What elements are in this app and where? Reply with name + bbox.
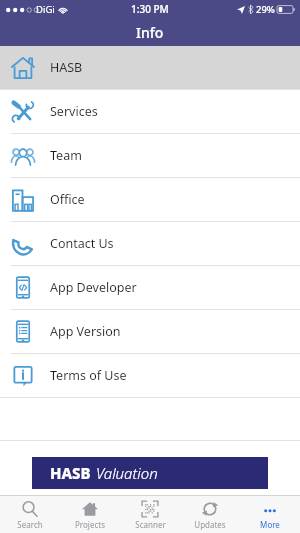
staticText: Team [50, 147, 82, 164]
button[interactable]: More [240, 496, 300, 533]
staticText: App Version [50, 323, 121, 340]
staticText: Search [17, 519, 43, 530]
button[interactable]: HASB [0, 46, 300, 89]
staticText: Office [50, 191, 85, 208]
staticText: More [260, 519, 280, 530]
staticText: 1:30 PM [131, 2, 169, 16]
button[interactable]: Updates [180, 496, 240, 533]
button[interactable]: Office [0, 178, 300, 221]
staticText: HASB [50, 59, 83, 76]
staticText: Services [50, 103, 98, 120]
button[interactable]: Search [0, 496, 60, 533]
button[interactable]: Team [0, 134, 300, 177]
staticText: DiGi [36, 3, 55, 16]
staticText: Valuation [96, 463, 158, 483]
button[interactable]: Terms of Use [0, 354, 300, 397]
staticText: Contact Us [50, 235, 114, 252]
staticText: Terms of Use [50, 367, 127, 384]
staticText: App Developer [50, 279, 137, 296]
button[interactable]: HASB [32, 457, 268, 489]
staticText: Updates [194, 519, 226, 530]
button[interactable]: App Version [0, 310, 300, 353]
staticText: Projects [75, 519, 105, 530]
button[interactable]: Projects [60, 496, 120, 533]
staticText: HASB [50, 463, 91, 483]
staticText: Info [136, 23, 164, 42]
button[interactable]: Scanner [120, 496, 180, 533]
button[interactable]: App Developer [0, 266, 300, 309]
button[interactable]: Contact Us [0, 222, 300, 265]
staticText: Scanner [135, 519, 166, 530]
staticText: 29% [256, 3, 275, 16]
button[interactable]: Services [0, 90, 300, 133]
